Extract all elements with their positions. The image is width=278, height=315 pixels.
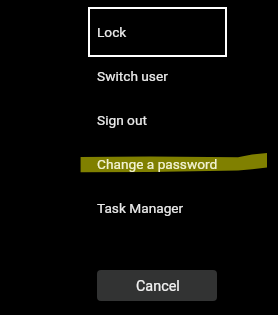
button[interactable]: Lock — [88, 7, 227, 57]
staticText: Switch user — [97, 68, 168, 84]
button[interactable]: Cancel — [97, 270, 217, 301]
button[interactable]: Switch user — [88, 54, 227, 97]
staticText: Lock — [97, 24, 127, 40]
staticText: Cancel — [136, 278, 180, 295]
staticText: Sign out — [97, 112, 147, 128]
button[interactable]: Change a password — [88, 142, 227, 185]
staticText: Task Manager — [97, 200, 184, 216]
button[interactable]: Sign out — [88, 98, 227, 141]
button[interactable]: Task Manager — [88, 186, 227, 229]
staticText: Change a password — [97, 156, 218, 172]
